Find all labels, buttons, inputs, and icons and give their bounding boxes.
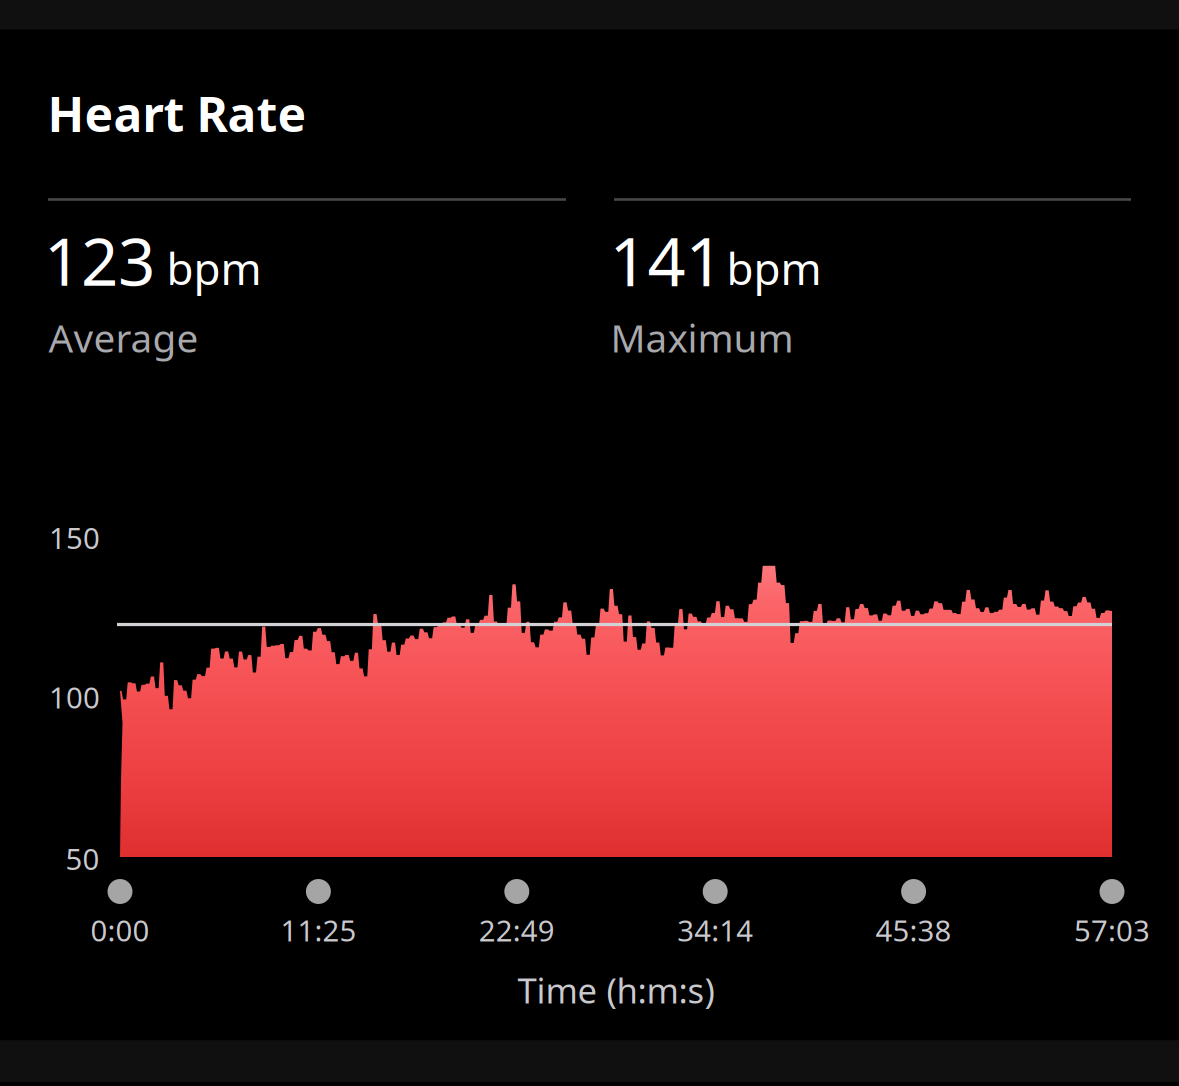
staticText: 11:25 xyxy=(280,910,356,949)
staticText: 0:00 xyxy=(90,910,149,949)
button[interactable]: Heart Rate. Average 123 bpm, Maximum 141… xyxy=(0,29,1179,1040)
staticText: 57:03 xyxy=(1074,910,1150,949)
staticText: bpm xyxy=(166,239,261,297)
staticText: bpm xyxy=(726,239,821,297)
staticText: Average xyxy=(48,312,198,363)
staticText: 141 xyxy=(609,216,723,305)
staticText: 150 xyxy=(49,518,100,557)
staticText: 34:14 xyxy=(677,910,753,949)
staticText: 100 xyxy=(49,677,100,716)
staticText: Time (h:m:s) xyxy=(517,967,714,1013)
staticText: 50 xyxy=(65,839,99,878)
staticText: Heart Rate xyxy=(47,82,306,145)
staticText: 123 xyxy=(44,217,155,304)
staticText: 22:49 xyxy=(479,910,555,949)
staticText: Maximum xyxy=(610,312,793,363)
staticText: 45:38 xyxy=(876,910,952,949)
